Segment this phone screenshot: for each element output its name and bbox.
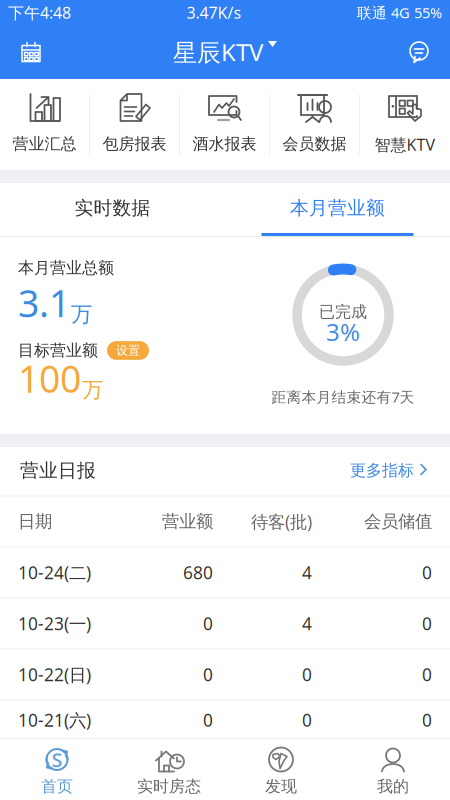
staticText: 10-21(六) xyxy=(18,708,91,731)
button[interactable]: 营业汇总 xyxy=(0,79,90,170)
staticText: 0 xyxy=(422,612,432,635)
staticText: 100 xyxy=(18,353,81,403)
button[interactable]: 设置 xyxy=(107,341,149,360)
staticText: 日期 xyxy=(18,511,52,532)
staticText: 会员储值 xyxy=(364,511,432,532)
staticText: 0 xyxy=(422,663,432,686)
staticText: 发现 xyxy=(265,776,297,796)
button[interactable]: S xyxy=(1,738,113,800)
button[interactable]: 包房报表 xyxy=(90,79,180,170)
staticText: 0 xyxy=(203,612,213,635)
button[interactable]: 我的 xyxy=(337,738,449,800)
staticText: 0 xyxy=(203,663,213,686)
staticText: 3.1 xyxy=(18,278,70,327)
staticText: 实时房态 xyxy=(137,776,201,796)
button[interactable]: 会员数据 xyxy=(270,79,360,170)
staticText: 4 xyxy=(302,561,312,584)
button[interactable]: 更多指标 xyxy=(350,461,428,480)
staticText: 星辰KTV xyxy=(173,36,263,68)
staticText: 55% xyxy=(410,3,442,22)
staticText: 4 xyxy=(302,612,312,635)
staticText: 0 xyxy=(302,663,312,686)
staticText: 实时数据 xyxy=(74,196,150,219)
staticText: 设置 xyxy=(116,343,140,358)
button[interactable]: 消息 xyxy=(396,25,442,79)
staticText: 待客(批) xyxy=(251,510,312,533)
staticText: 更多指标 xyxy=(350,461,414,480)
staticText: 目标营业额 xyxy=(18,341,98,360)
staticText: 0 xyxy=(422,561,432,584)
button[interactable]: 本月营业额 xyxy=(225,183,450,236)
staticText: 已完成 xyxy=(319,302,367,322)
button[interactable]: 智慧KTV xyxy=(360,79,450,170)
staticText: 营业汇总 xyxy=(12,134,76,154)
staticText: 首页 xyxy=(41,776,73,796)
button[interactable]: 发现 xyxy=(225,738,337,800)
staticText: 10-22(日) xyxy=(18,663,91,686)
staticText: 680 xyxy=(183,561,213,584)
button[interactable]: 实时房态 xyxy=(113,738,225,800)
staticText: 万 xyxy=(82,377,103,403)
staticText: 营业日报 xyxy=(20,459,96,482)
staticText: 0 xyxy=(422,708,432,731)
staticText: 下午4:48 xyxy=(8,2,71,23)
staticText: 酒水报表 xyxy=(192,134,256,154)
staticText: 营业额 xyxy=(162,511,213,532)
staticText: 10-24(二) xyxy=(18,561,91,584)
staticText: 会员数据 xyxy=(282,134,346,154)
staticText: 我的 xyxy=(377,776,409,796)
staticText: 本月营业总额 xyxy=(18,258,114,278)
staticText: 距离本月结束还有7天 xyxy=(271,387,414,406)
staticText: 包房报表 xyxy=(102,134,166,154)
button[interactable]: 日历 xyxy=(8,25,54,79)
staticText: 10-23(一) xyxy=(18,612,91,635)
staticText: 本月营业额 xyxy=(290,196,385,219)
staticText: S xyxy=(51,746,62,773)
staticText: 联通 4G xyxy=(357,3,410,22)
button[interactable]: 实时数据 xyxy=(0,183,225,236)
staticText: 3.47K/s xyxy=(186,2,241,23)
staticText: 3% xyxy=(326,316,360,348)
staticText: 智慧KTV xyxy=(374,134,435,155)
staticText: 万 xyxy=(71,301,92,327)
staticText: 0 xyxy=(302,708,312,731)
staticText: 0 xyxy=(203,708,213,731)
button[interactable]: 酒水报表 xyxy=(180,79,270,170)
